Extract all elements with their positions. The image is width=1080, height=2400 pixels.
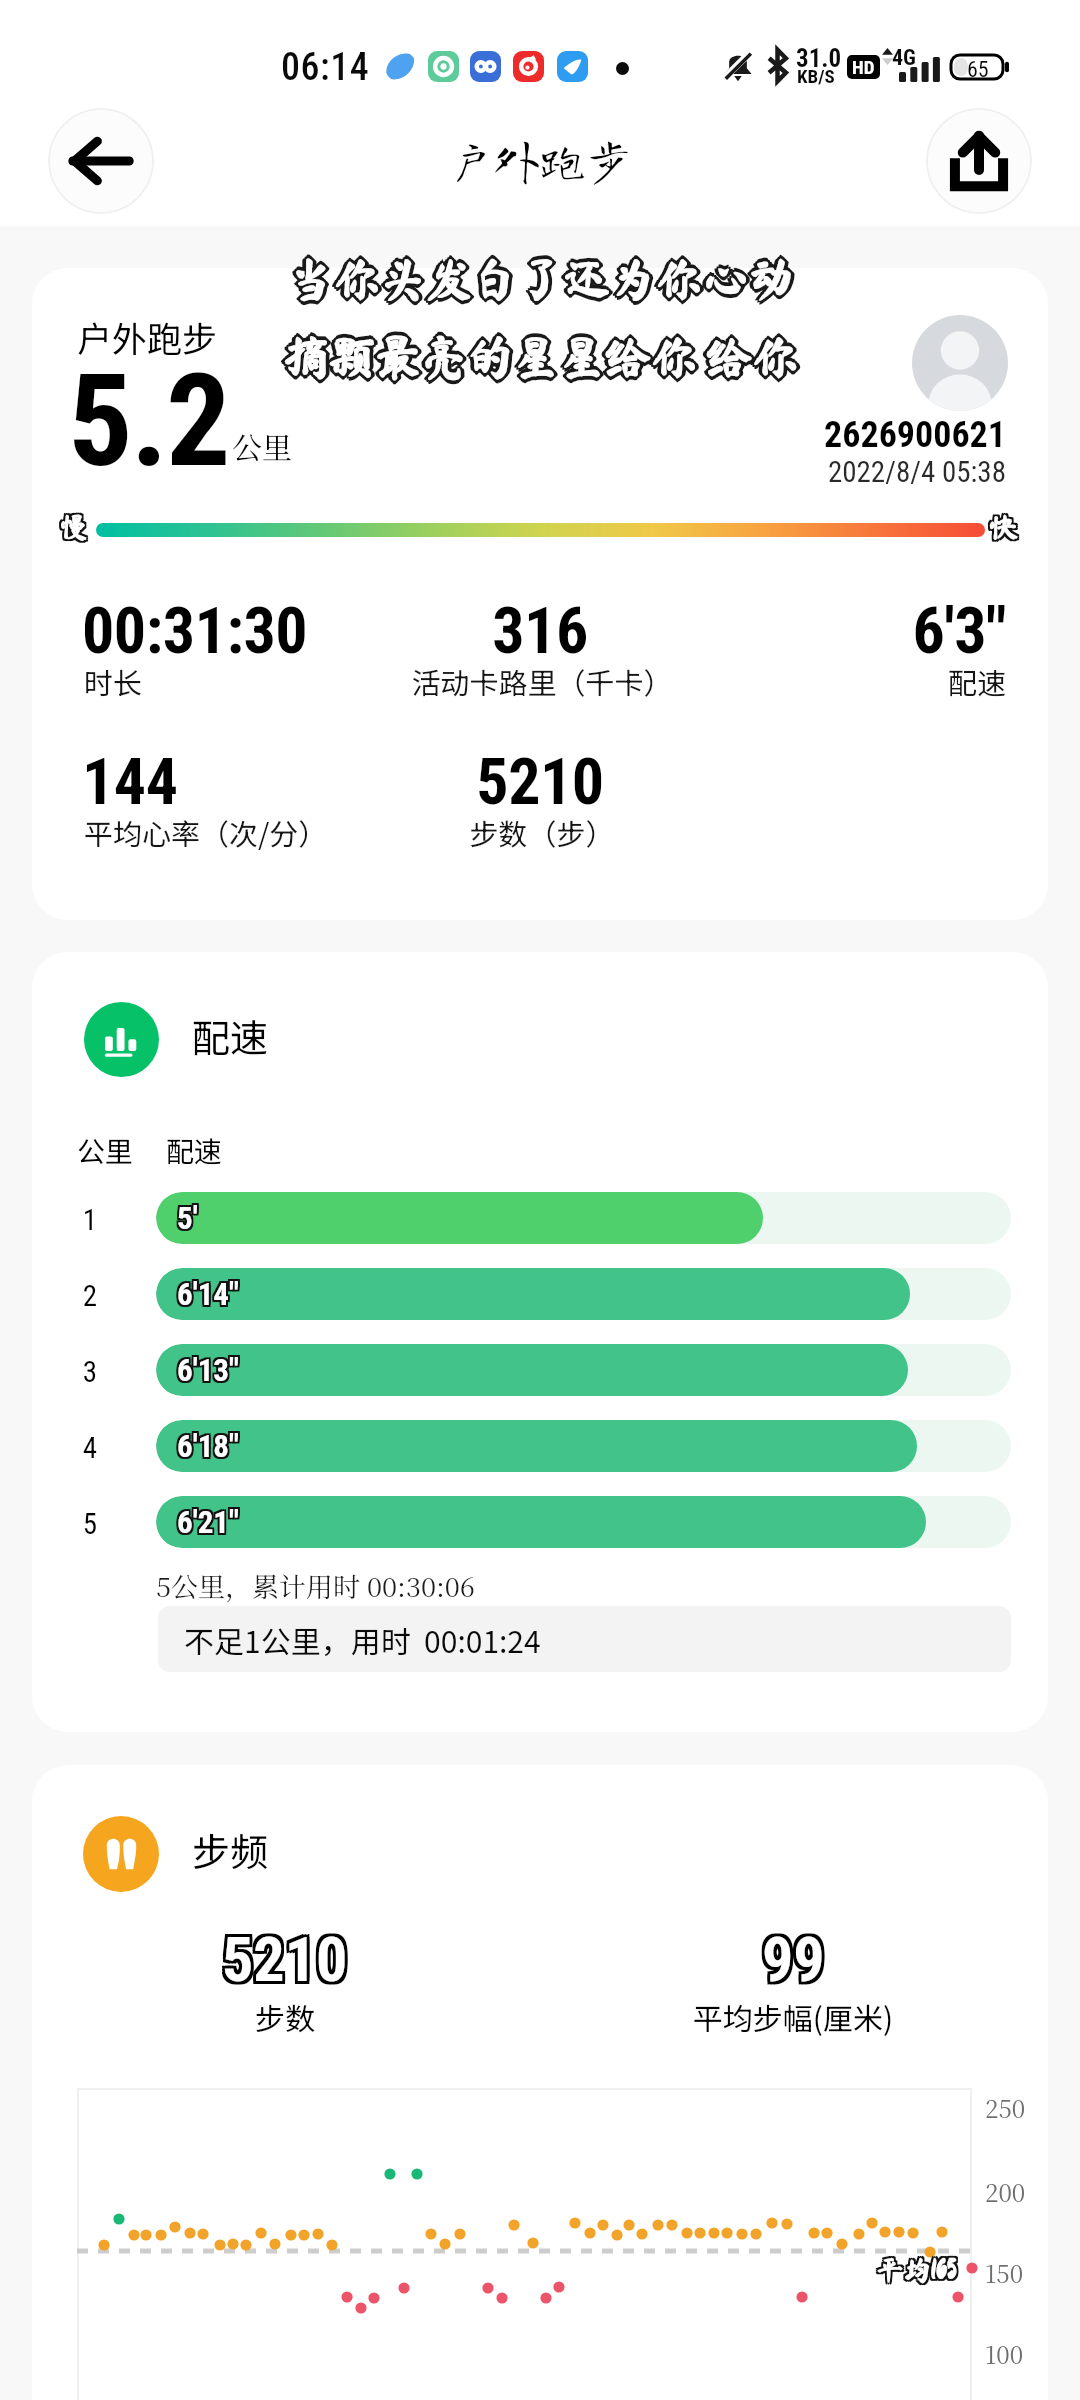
staticText: 5210 xyxy=(222,1923,348,1996)
staticText: 慢 xyxy=(57,513,86,541)
staticText: 5' xyxy=(175,1198,196,1234)
staticText: 平均165 xyxy=(874,2256,955,2283)
staticText: 摘颗最亮的星星给你 给你 xyxy=(284,335,800,381)
staticText: 99 xyxy=(765,1926,828,1999)
staticText: 06:14 xyxy=(281,45,370,90)
staticText: 步数（步） xyxy=(334,811,750,853)
staticText: 6'13" xyxy=(175,1352,237,1388)
staticText: 99 xyxy=(759,1926,822,1999)
staticText: 当你头发白了还为你心动 xyxy=(287,253,793,299)
staticText: 快 xyxy=(989,513,1018,541)
staticText: 6'18" xyxy=(179,1428,241,1464)
staticText: 2626900621 xyxy=(632,414,1006,456)
staticText: 00:31:30 xyxy=(82,594,308,669)
button[interactable]: 户外跑步 xyxy=(32,268,1048,920)
staticText: 5' xyxy=(175,1200,196,1236)
staticText: 6'13" xyxy=(175,1350,237,1386)
staticText: 配速 xyxy=(166,1130,223,1171)
staticText: 99 xyxy=(765,1920,828,1993)
staticText: 快 xyxy=(991,511,1020,539)
staticText: 99 xyxy=(762,1926,825,1999)
staticText: 当你头发白了还为你心动 xyxy=(285,257,791,303)
staticText: 平均165 xyxy=(874,2258,955,2285)
staticText: 慢 xyxy=(57,511,86,539)
staticText: 3 xyxy=(70,1355,110,1389)
staticText: 摘颗最亮的星星给你 给你 xyxy=(278,335,794,381)
staticText: 摘颗最亮的星星给你 给你 xyxy=(284,337,800,383)
staticText: 5210 xyxy=(219,1920,345,1993)
button[interactable]: 步频 xyxy=(32,1765,1048,2400)
staticText: 摘颗最亮的星星给你 给你 xyxy=(282,337,798,383)
staticText: 平均165 xyxy=(876,2256,957,2283)
button[interactable]: Share xyxy=(926,108,1032,214)
staticText: 6'21" xyxy=(175,1502,237,1538)
staticText: 6'14" xyxy=(175,1278,237,1314)
staticText: 配速 xyxy=(192,1008,269,1063)
staticText: 2022/8/4 05:38 xyxy=(632,455,1006,489)
staticText: 当你头发白了还为你心动 xyxy=(285,255,791,301)
staticText: 6'21" xyxy=(179,1502,241,1538)
staticText: 5' xyxy=(177,1198,198,1234)
staticText: 5 xyxy=(70,1507,110,1541)
staticText: 5210 xyxy=(222,1926,348,1999)
staticText: 6'13" xyxy=(179,1352,241,1388)
staticText: 4 xyxy=(70,1431,110,1465)
button[interactable]: 不足1公里，用时 00:01:24 xyxy=(158,1606,1011,1672)
staticText: 6'18" xyxy=(179,1430,241,1466)
staticText: 平均165 xyxy=(876,2254,957,2281)
staticText: 6'21" xyxy=(179,1504,241,1540)
button[interactable]: User profile xyxy=(912,315,1008,411)
staticText: 平均165 xyxy=(876,2258,957,2285)
staticText: 步数 xyxy=(60,1995,510,2038)
staticText: 步频 xyxy=(192,1822,269,1877)
staticText: 当你头发白了还为你心动 xyxy=(287,259,793,305)
staticText: 6'21" xyxy=(177,1502,239,1538)
staticText: 6'21" xyxy=(177,1504,239,1540)
staticText: 配速 xyxy=(632,660,1006,702)
staticText: 99 xyxy=(762,1923,825,1996)
staticText: 65 xyxy=(967,57,989,83)
staticText: 5.2 xyxy=(68,346,229,496)
staticText: 5210 xyxy=(222,1920,348,1993)
staticText: 6'18" xyxy=(175,1426,237,1462)
staticText: 5' xyxy=(177,1202,198,1238)
staticText: 5210 xyxy=(332,745,748,820)
button[interactable]: 配速 xyxy=(32,952,1048,1732)
staticText: 户外跑步 xyxy=(448,137,632,183)
staticText: 6'21" xyxy=(175,1504,237,1540)
staticText: 5公里，累计用时 00:30:06 xyxy=(156,1566,475,1605)
staticText: 4G xyxy=(892,45,916,71)
staticText: 5' xyxy=(179,1198,200,1234)
staticText: 31.0 xyxy=(796,44,842,73)
staticText: 慢 xyxy=(57,515,86,543)
staticText: 慢 xyxy=(61,513,90,541)
staticText: 6'13" xyxy=(177,1354,239,1390)
staticText: 快 xyxy=(989,515,1018,543)
staticText: 6'14" xyxy=(175,1276,237,1312)
staticText: 6'13" xyxy=(179,1350,241,1386)
staticText: 活动卡路里（千卡） xyxy=(334,660,750,702)
staticText: 1 xyxy=(70,1203,110,1237)
button[interactable]: Back xyxy=(48,108,154,214)
staticText: 5' xyxy=(179,1200,200,1236)
staticText: 6'13" xyxy=(179,1354,241,1390)
staticText: 5210 xyxy=(225,1923,351,1996)
staticText: 慢 xyxy=(59,511,88,539)
staticText: 6'14" xyxy=(177,1274,239,1310)
staticText: 摘颗最亮的星星给你 给你 xyxy=(280,335,796,381)
staticText: 6'18" xyxy=(177,1430,239,1466)
staticText: 平均165 xyxy=(878,2258,959,2285)
staticText: 5210 xyxy=(219,1923,345,1996)
staticText: 当你头发白了还为你心动 xyxy=(289,255,795,301)
staticText: HD xyxy=(852,56,875,78)
staticText: 时长 xyxy=(84,660,143,702)
staticText: 不足1公里，用时 00:01:24 xyxy=(184,1618,541,1661)
staticText: 快 xyxy=(991,513,1020,541)
staticText: 250 xyxy=(985,2090,1026,2124)
staticText: 当你头发白了还为你心动 xyxy=(287,261,793,307)
staticText: 户外跑步 xyxy=(77,311,218,362)
staticText: 快 xyxy=(987,515,1016,543)
staticText: 快 xyxy=(989,511,1018,539)
staticText: 摘颗最亮的星星给你 给你 xyxy=(280,333,796,379)
staticText: 平均165 xyxy=(878,2256,959,2283)
